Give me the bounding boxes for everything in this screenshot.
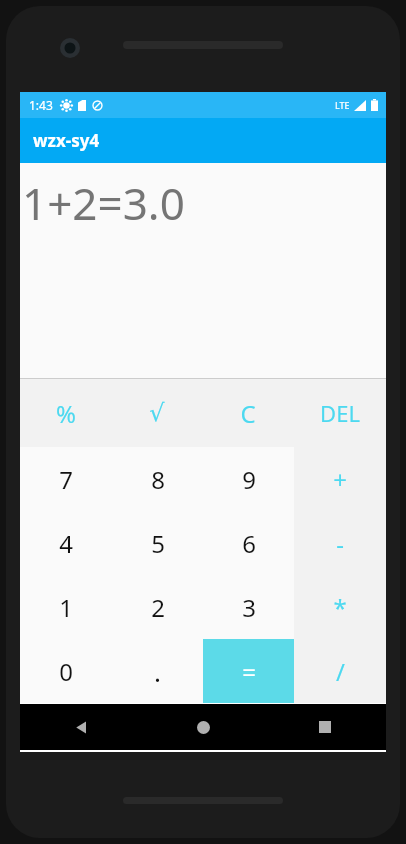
- button[interactable]: Recent apps: [301, 704, 349, 750]
- button[interactable]: 6: [203, 511, 294, 575]
- button[interactable]: +: [294, 447, 386, 511]
- button[interactable]: 8: [112, 447, 203, 511]
- button[interactable]: 9: [203, 447, 294, 511]
- staticText: 4: [59, 527, 73, 560]
- staticText: %: [56, 397, 76, 430]
- staticText: /: [336, 655, 345, 688]
- button[interactable]: 2: [112, 575, 203, 639]
- button[interactable]: /: [294, 639, 386, 703]
- staticText: LTE: [335, 99, 350, 111]
- button[interactable]: =: [203, 639, 294, 703]
- button[interactable]: %: [20, 379, 111, 447]
- button[interactable]: *: [294, 575, 386, 639]
- staticText: 5: [151, 527, 165, 560]
- button[interactable]: 7: [20, 447, 112, 511]
- staticText: +: [333, 463, 347, 496]
- button[interactable]: Back: [57, 704, 105, 750]
- button[interactable]: Home: [179, 704, 227, 750]
- staticText: 3: [242, 591, 256, 624]
- staticText: 2: [151, 591, 165, 624]
- staticText: wzx-sy4: [33, 129, 100, 152]
- staticText: 8: [151, 463, 165, 496]
- button[interactable]: C: [202, 379, 294, 447]
- button[interactable]: 1: [20, 575, 112, 639]
- staticText: *: [333, 591, 347, 624]
- staticText: 1:43: [29, 97, 53, 113]
- staticText: 9: [242, 463, 256, 496]
- staticText: 6: [242, 527, 256, 560]
- button[interactable]: .: [112, 639, 203, 703]
- button[interactable]: 4: [20, 511, 112, 575]
- button[interactable]: 0: [20, 639, 112, 703]
- staticText: DEL: [320, 398, 360, 428]
- staticText: C: [240, 397, 256, 430]
- button[interactable]: 5: [112, 511, 203, 575]
- staticText: √: [149, 399, 165, 427]
- staticText: 7: [59, 463, 73, 496]
- button[interactable]: -: [294, 511, 386, 575]
- button[interactable]: DEL: [294, 379, 386, 447]
- staticText: =: [242, 655, 256, 688]
- staticText: .: [154, 654, 161, 689]
- staticText: 0: [59, 655, 73, 688]
- staticText: 1+2=3.0: [22, 173, 185, 233]
- button[interactable]: √: [111, 379, 202, 447]
- button[interactable]: 3: [203, 575, 294, 639]
- staticText: 1: [59, 591, 73, 624]
- staticText: -: [336, 527, 344, 560]
